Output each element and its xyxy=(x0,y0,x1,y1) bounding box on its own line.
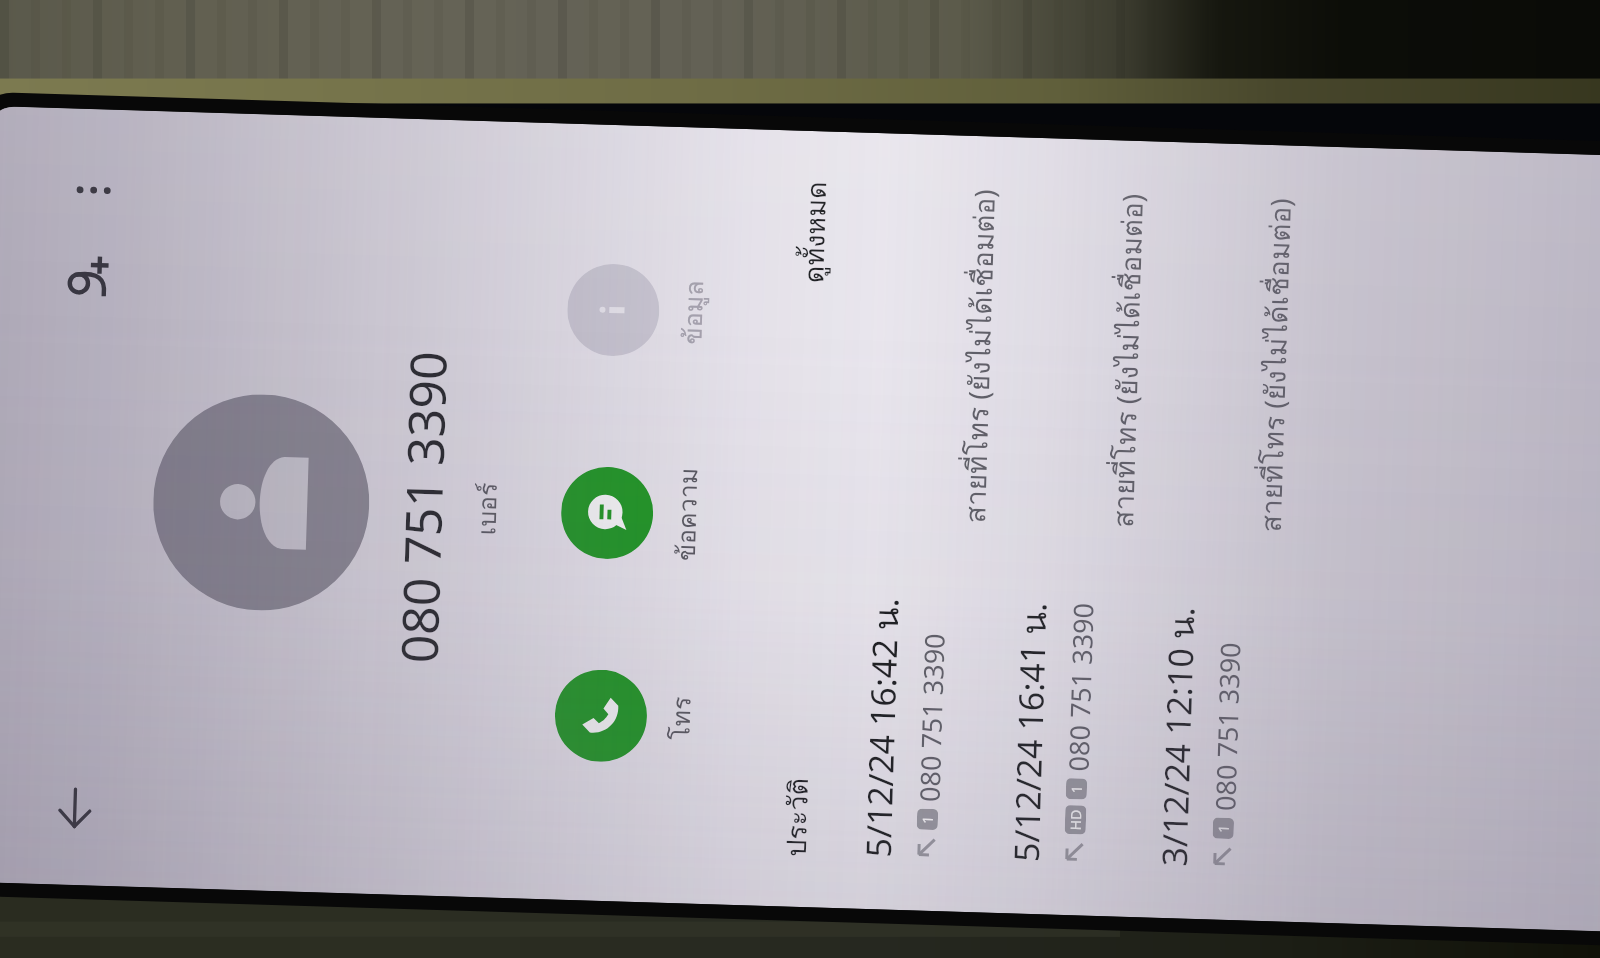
button[interactable]: ข้อมูล xyxy=(566,263,715,359)
staticText: ข้อความ xyxy=(666,469,708,562)
staticText: 080 751 3390 xyxy=(1059,602,1099,772)
button[interactable]: Back xyxy=(25,759,124,858)
staticText: สายที่โทร (ยังไม่ได้เชื่อมต่อ) xyxy=(1249,197,1302,533)
button[interactable]: 5/12/24 16:41 น. xyxy=(984,137,1156,917)
button[interactable]: More options xyxy=(49,146,138,234)
button[interactable]: ดูทั้งหมด xyxy=(792,180,838,284)
staticText: สายที่โทร (ยังไม่ได้เชื่อมต่อ) xyxy=(1101,192,1154,528)
staticText: 5/12/24 16:41 น. xyxy=(1000,601,1062,863)
staticText: HD xyxy=(1066,809,1085,831)
staticText: 080 751 3390 xyxy=(1206,641,1245,811)
button[interactable]: 3/12/24 12:10 น. xyxy=(1132,141,1304,921)
staticText: เบอร์ xyxy=(466,482,508,536)
staticText: ประวัติ xyxy=(775,777,820,857)
staticText: 080 751 3390 xyxy=(910,632,950,802)
staticText: 1 xyxy=(1214,823,1233,833)
staticText: โทร xyxy=(660,696,701,741)
staticText: 1 xyxy=(918,814,937,824)
staticText: ดูทั้งหมด xyxy=(792,180,838,284)
button[interactable]: Add contact xyxy=(47,232,135,320)
button[interactable]: โทร xyxy=(554,668,702,765)
staticText: สายที่โทร (ยังไม่ได้เชื่อมต่อ) xyxy=(953,188,1006,524)
staticText: ข้อมูล xyxy=(672,280,714,345)
staticText: 1 xyxy=(1067,784,1086,794)
button[interactable]: ข้อความ xyxy=(560,465,708,562)
staticText: 3/12/24 12:10 น. xyxy=(1148,606,1210,867)
staticText: 080 751 3390 xyxy=(384,350,462,664)
staticText: 5/12/24 16:42 น. xyxy=(852,597,914,858)
button[interactable]: 5/12/24 16:42 น. xyxy=(836,132,1008,912)
